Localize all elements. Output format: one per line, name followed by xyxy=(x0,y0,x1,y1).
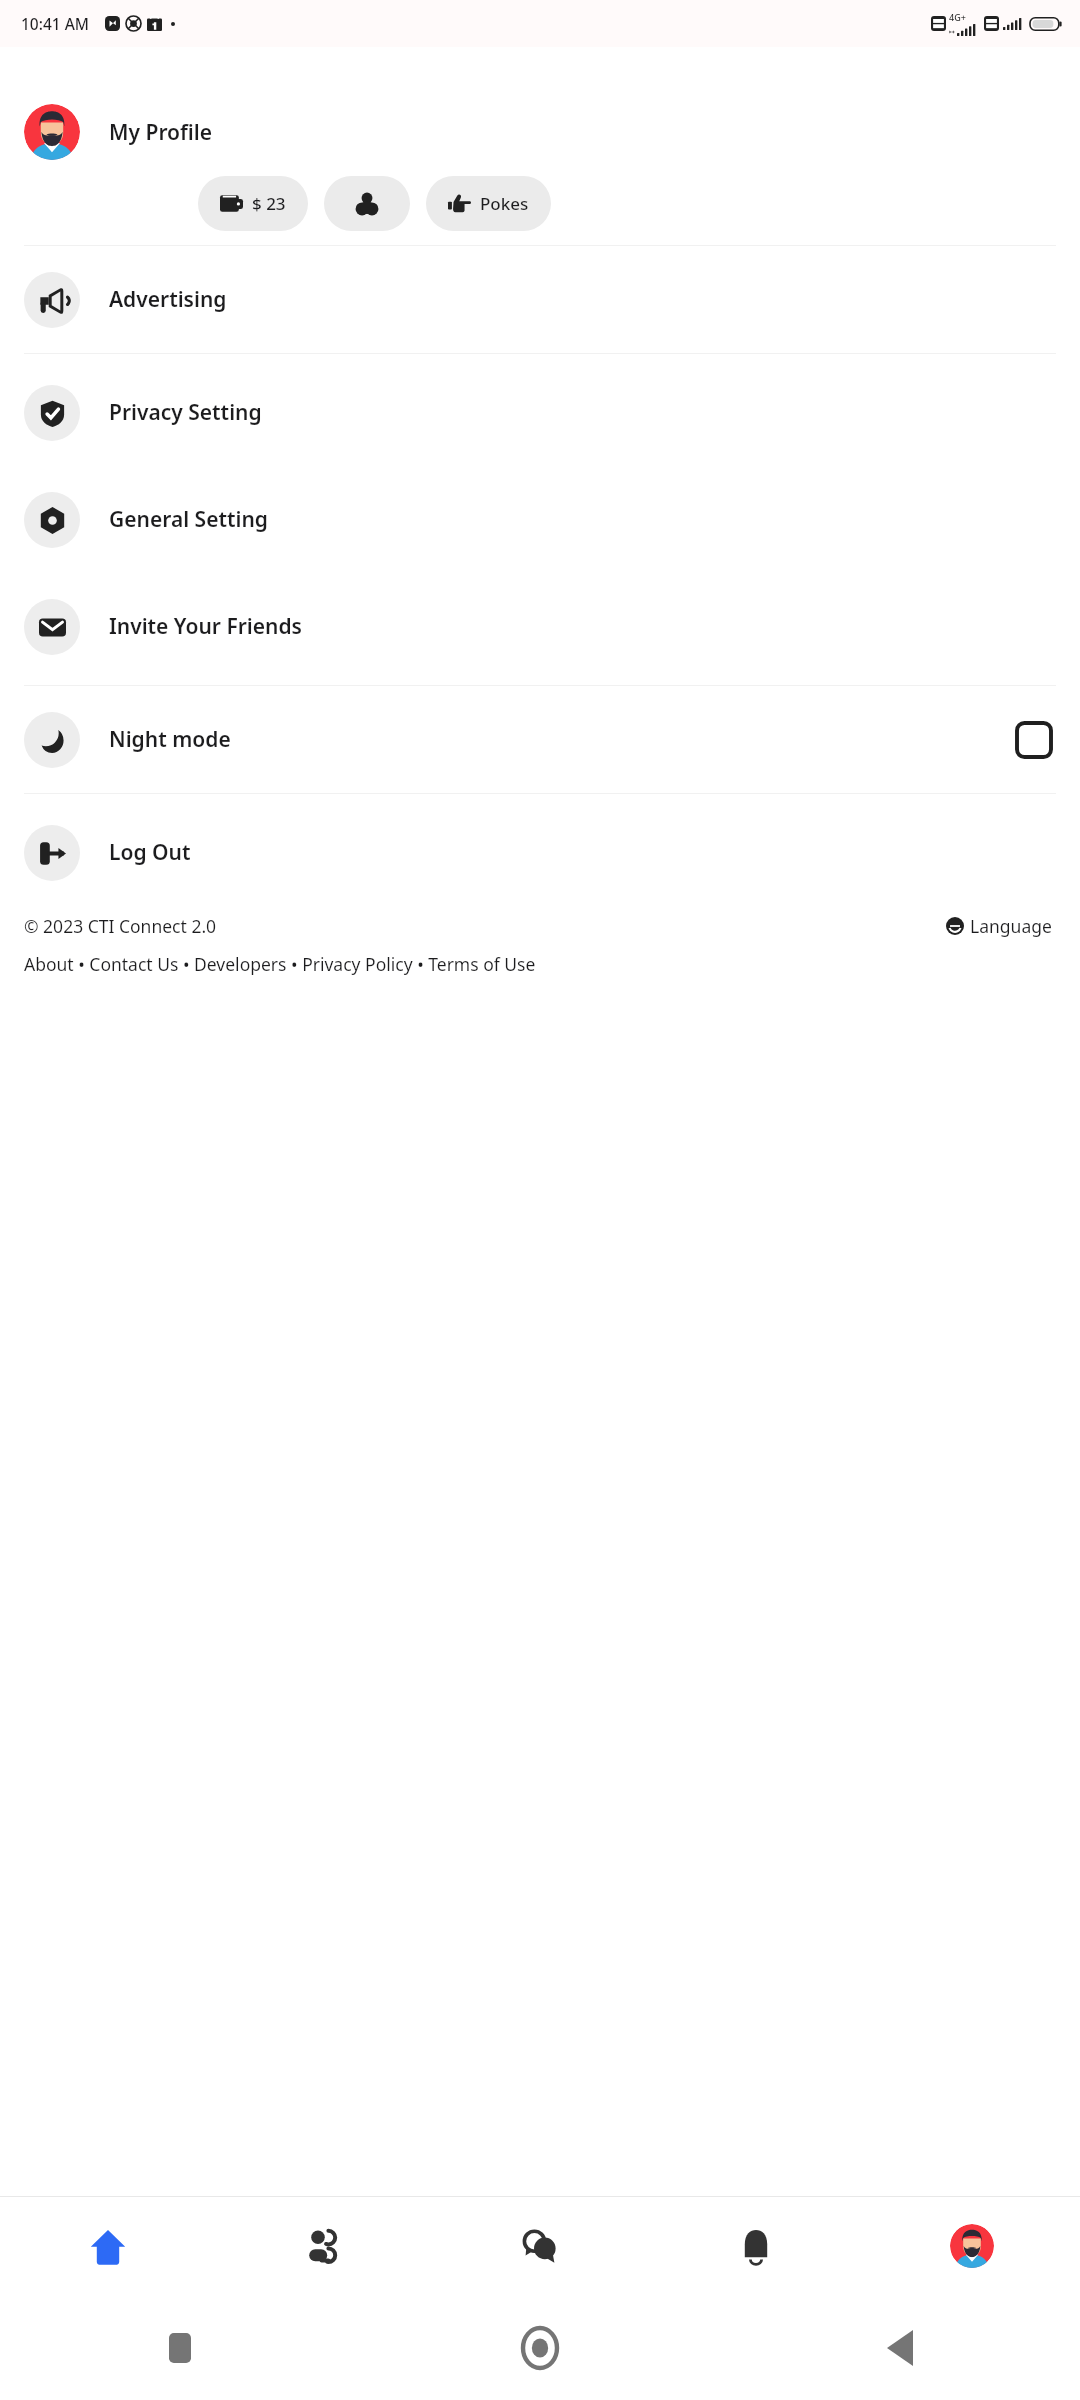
staticText: Privacy Setting xyxy=(109,398,262,427)
button[interactable]: Notifications xyxy=(648,2197,864,2295)
button[interactable]: Profile xyxy=(864,2197,1080,2295)
button[interactable]: About • Contact Us • Developers • Privac… xyxy=(24,952,1056,976)
staticText: 10:41 AM xyxy=(21,13,90,34)
button[interactable]: My Profile xyxy=(0,100,1080,164)
staticText: $ 23 xyxy=(252,192,286,215)
button[interactable]: Log Out xyxy=(0,799,1080,906)
button[interactable]: Privacy Setting xyxy=(0,359,1080,466)
button[interactable]: Back xyxy=(720,2295,1080,2400)
button[interactable]: Toggle night mode xyxy=(1012,718,1056,762)
staticText: Log Out xyxy=(109,838,191,867)
staticText: Pokes xyxy=(480,192,529,215)
staticText: Language xyxy=(970,914,1052,938)
staticText: Night mode xyxy=(109,725,231,754)
staticText: My Profile xyxy=(109,118,213,147)
button[interactable]: Chats xyxy=(432,2197,648,2295)
staticText: © 2023 CTI Connect 2.0 xyxy=(24,914,217,938)
button[interactable]: Groups xyxy=(324,176,410,231)
button[interactable]: Invite Your Friends xyxy=(0,573,1080,680)
staticText: 4G+ xyxy=(949,11,966,23)
button[interactable]: Recents xyxy=(0,2295,360,2400)
button[interactable]: General Setting xyxy=(0,466,1080,573)
button[interactable]: Pokes xyxy=(426,176,551,231)
button[interactable]: Friends xyxy=(216,2197,432,2295)
staticText: Invite Your Friends xyxy=(109,612,302,641)
button[interactable]: Advertising xyxy=(0,246,1080,353)
button[interactable]: Home xyxy=(360,2295,720,2400)
button[interactable]: Language xyxy=(942,910,1056,942)
staticText: Advertising xyxy=(109,285,227,314)
staticText: General Setting xyxy=(109,505,268,534)
button[interactable]: $ 23 xyxy=(198,176,308,231)
button[interactable]: Night mode xyxy=(0,686,1080,793)
button[interactable]: Home xyxy=(0,2197,216,2295)
